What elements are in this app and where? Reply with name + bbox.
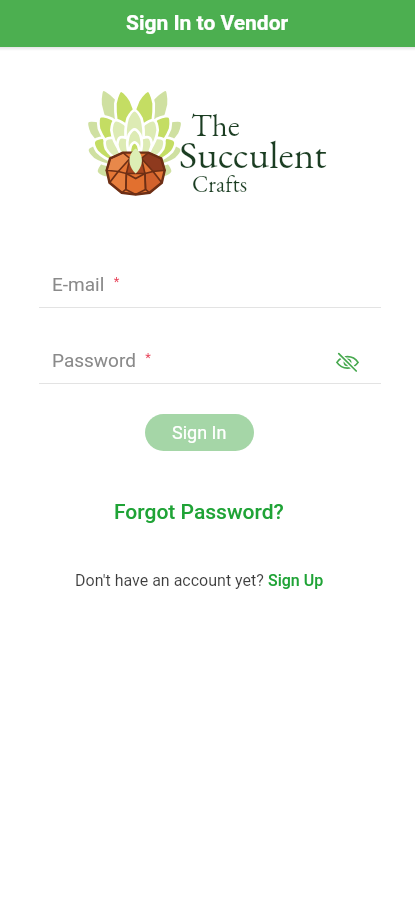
- button[interactable]: Sign In: [145, 414, 254, 451]
- button[interactable]: Don't have an account yet?: [67, 566, 332, 595]
- staticText: Sign In: [172, 422, 227, 443]
- staticText: Sign In to Vendor: [126, 11, 289, 36]
- staticText: Forgot Password?: [114, 500, 284, 525]
- staticText: Succulent: [179, 129, 327, 180]
- staticText: Crafts: [192, 169, 248, 199]
- staticText: The: [191, 105, 240, 145]
- staticText: Password *: [52, 349, 151, 371]
- staticText: Don't have an account yet?: [75, 571, 268, 590]
- button[interactable]: Show password: [330, 345, 364, 379]
- staticText: E-mail *: [52, 273, 120, 295]
- button[interactable]: Forgot Password?: [106, 495, 292, 530]
- staticText: Sign Up: [268, 571, 324, 590]
